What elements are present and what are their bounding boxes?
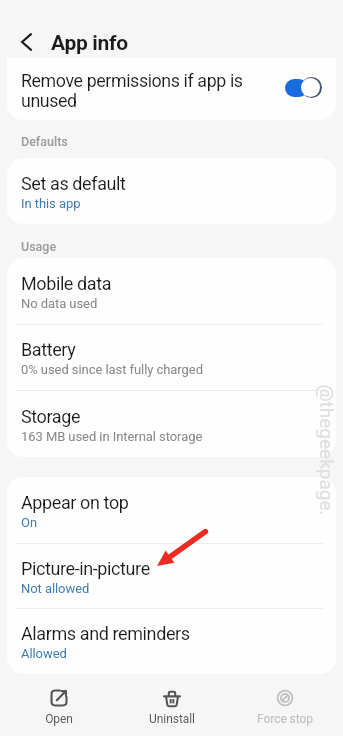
button[interactable]: Open [2, 681, 115, 736]
button[interactable]: Uninstall [115, 681, 228, 736]
staticText: Alarms and reminders [21, 623, 190, 644]
staticText: Open [45, 712, 73, 726]
button[interactable]: Battery [7, 324, 336, 390]
staticText: @thegeekpage.com [313, 384, 337, 519]
button[interactable]: Storage [7, 391, 336, 457]
staticText: Picture-in-picture [21, 558, 150, 579]
button[interactable]: Force stop [228, 681, 341, 736]
staticText: Battery [21, 339, 76, 360]
staticText: Defaults [21, 134, 68, 149]
staticText: On [21, 515, 37, 530]
staticText: 0% used since last fully charged [21, 362, 203, 377]
staticText: Appear on top [21, 492, 129, 513]
staticText: Allowed [21, 646, 67, 661]
button[interactable]: Picture-in-picture [7, 543, 336, 609]
button[interactable]: Remove permissions if app is unused togg… [281, 74, 321, 101]
button[interactable]: Remove permissions if app is unused [7, 58, 336, 120]
staticText: Remove permissions if app is unused [21, 70, 243, 111]
staticText: Uninstall [149, 712, 195, 726]
staticText: Storage [21, 406, 81, 427]
staticText: App info [51, 31, 128, 56]
staticText: Set as default [21, 173, 126, 194]
button[interactable]: Set as default [7, 158, 336, 224]
staticText: Force stop [257, 712, 313, 726]
staticText: Not allowed [21, 581, 90, 596]
button[interactable]: Alarms and reminders [7, 608, 336, 674]
staticText: No data used [21, 296, 98, 311]
staticText: In this app [21, 196, 81, 211]
button[interactable]: Mobile data [7, 258, 336, 324]
button[interactable]: Appear on top [7, 477, 336, 543]
staticText: Usage [21, 239, 57, 254]
staticText: Mobile data [21, 273, 112, 294]
staticText: 163 MB used in Internal storage [21, 429, 203, 444]
button[interactable]: Back [9, 24, 45, 60]
